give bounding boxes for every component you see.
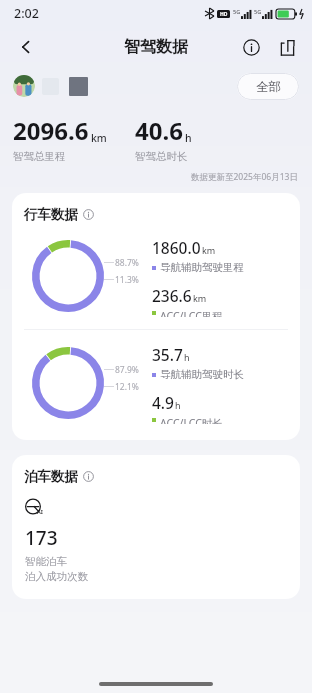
button[interactable]: Share (270, 30, 304, 64)
staticText: 智驾数据 (124, 37, 188, 57)
staticText: 11.3% (115, 274, 139, 286)
staticText: 全部 (256, 79, 281, 95)
staticText: 泊车数据 (24, 468, 78, 485)
staticText: 智能泊车 (25, 555, 67, 568)
staticText: 87.9% (115, 364, 139, 376)
staticText: 导航辅助驾驶时长 (160, 368, 244, 381)
staticText: 泊入成功次数 (25, 570, 88, 583)
staticText: AI (37, 508, 43, 515)
staticText: 173 (25, 525, 58, 551)
button[interactable]: Back (8, 29, 44, 65)
staticText: ACC/LCC里程 (160, 309, 223, 317)
staticText: 88.7% (115, 257, 139, 269)
staticText: 智驾总里程 (13, 150, 66, 163)
staticText: 2:02 (14, 5, 39, 22)
staticText: 导航辅助驾驶里程 (160, 261, 244, 274)
staticText: 5G (254, 8, 262, 15)
staticText: h (175, 399, 181, 411)
staticText: 5G (233, 8, 241, 15)
button[interactable]: 全部 (237, 73, 299, 100)
staticText: 12.1% (115, 381, 139, 393)
button[interactable]: Info (234, 30, 268, 64)
staticText: 2096.6 (13, 114, 89, 147)
staticText: km (202, 244, 216, 256)
staticText: 40.6 (135, 114, 183, 147)
staticText: 4.9 (152, 392, 174, 413)
staticText: 35.7 (152, 344, 183, 365)
staticText: km (91, 131, 107, 145)
staticText: ACC/LCC时长 (160, 416, 223, 424)
staticText: 1860.0 (152, 237, 201, 258)
staticText: 数据更新至2025年06月13日 (191, 171, 298, 183)
staticText: 236.6 (152, 285, 192, 306)
staticText: h (184, 351, 190, 363)
staticText: h (185, 131, 192, 145)
button[interactable]: Profile (13, 75, 35, 97)
staticText: km (193, 292, 207, 304)
button[interactable]: Vehicle 2 (69, 77, 88, 96)
staticText: HD (220, 11, 228, 18)
staticText: 行车数据 (24, 206, 78, 223)
staticText: 智驾总时长 (135, 150, 188, 163)
